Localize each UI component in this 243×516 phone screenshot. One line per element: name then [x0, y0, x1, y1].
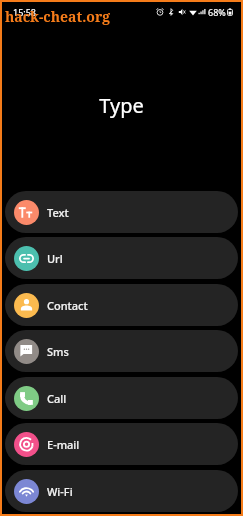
staticText: Url — [47, 251, 63, 266]
staticText: 68% — [208, 6, 226, 18]
other: Muted — [178, 8, 186, 16]
button[interactable]: Sms — [5, 330, 238, 372]
button[interactable]: Wi-Fi — [5, 470, 238, 512]
staticText: hack-cheat.org — [5, 7, 111, 26]
other: Battery — [227, 8, 233, 16]
staticText: Call — [47, 391, 67, 406]
staticText: E-mail — [47, 437, 80, 452]
button[interactable]: Call — [5, 377, 238, 419]
staticText: Sms — [47, 344, 69, 359]
staticText: Wi-Fi — [47, 484, 73, 499]
other: Wi-Fi — [189, 8, 197, 16]
other: Signal — [198, 8, 206, 16]
staticText: 15:58 — [13, 6, 37, 18]
staticText: Text — [47, 205, 69, 220]
staticText: Type — [2, 92, 241, 119]
button[interactable]: Text — [5, 191, 238, 233]
other: Alarm — [156, 8, 164, 16]
button[interactable]: E-mail — [5, 423, 238, 465]
staticText: Contact — [47, 298, 88, 313]
button[interactable]: Contact — [5, 284, 238, 326]
button[interactable]: Url — [5, 237, 238, 279]
other: Bluetooth — [167, 8, 175, 16]
